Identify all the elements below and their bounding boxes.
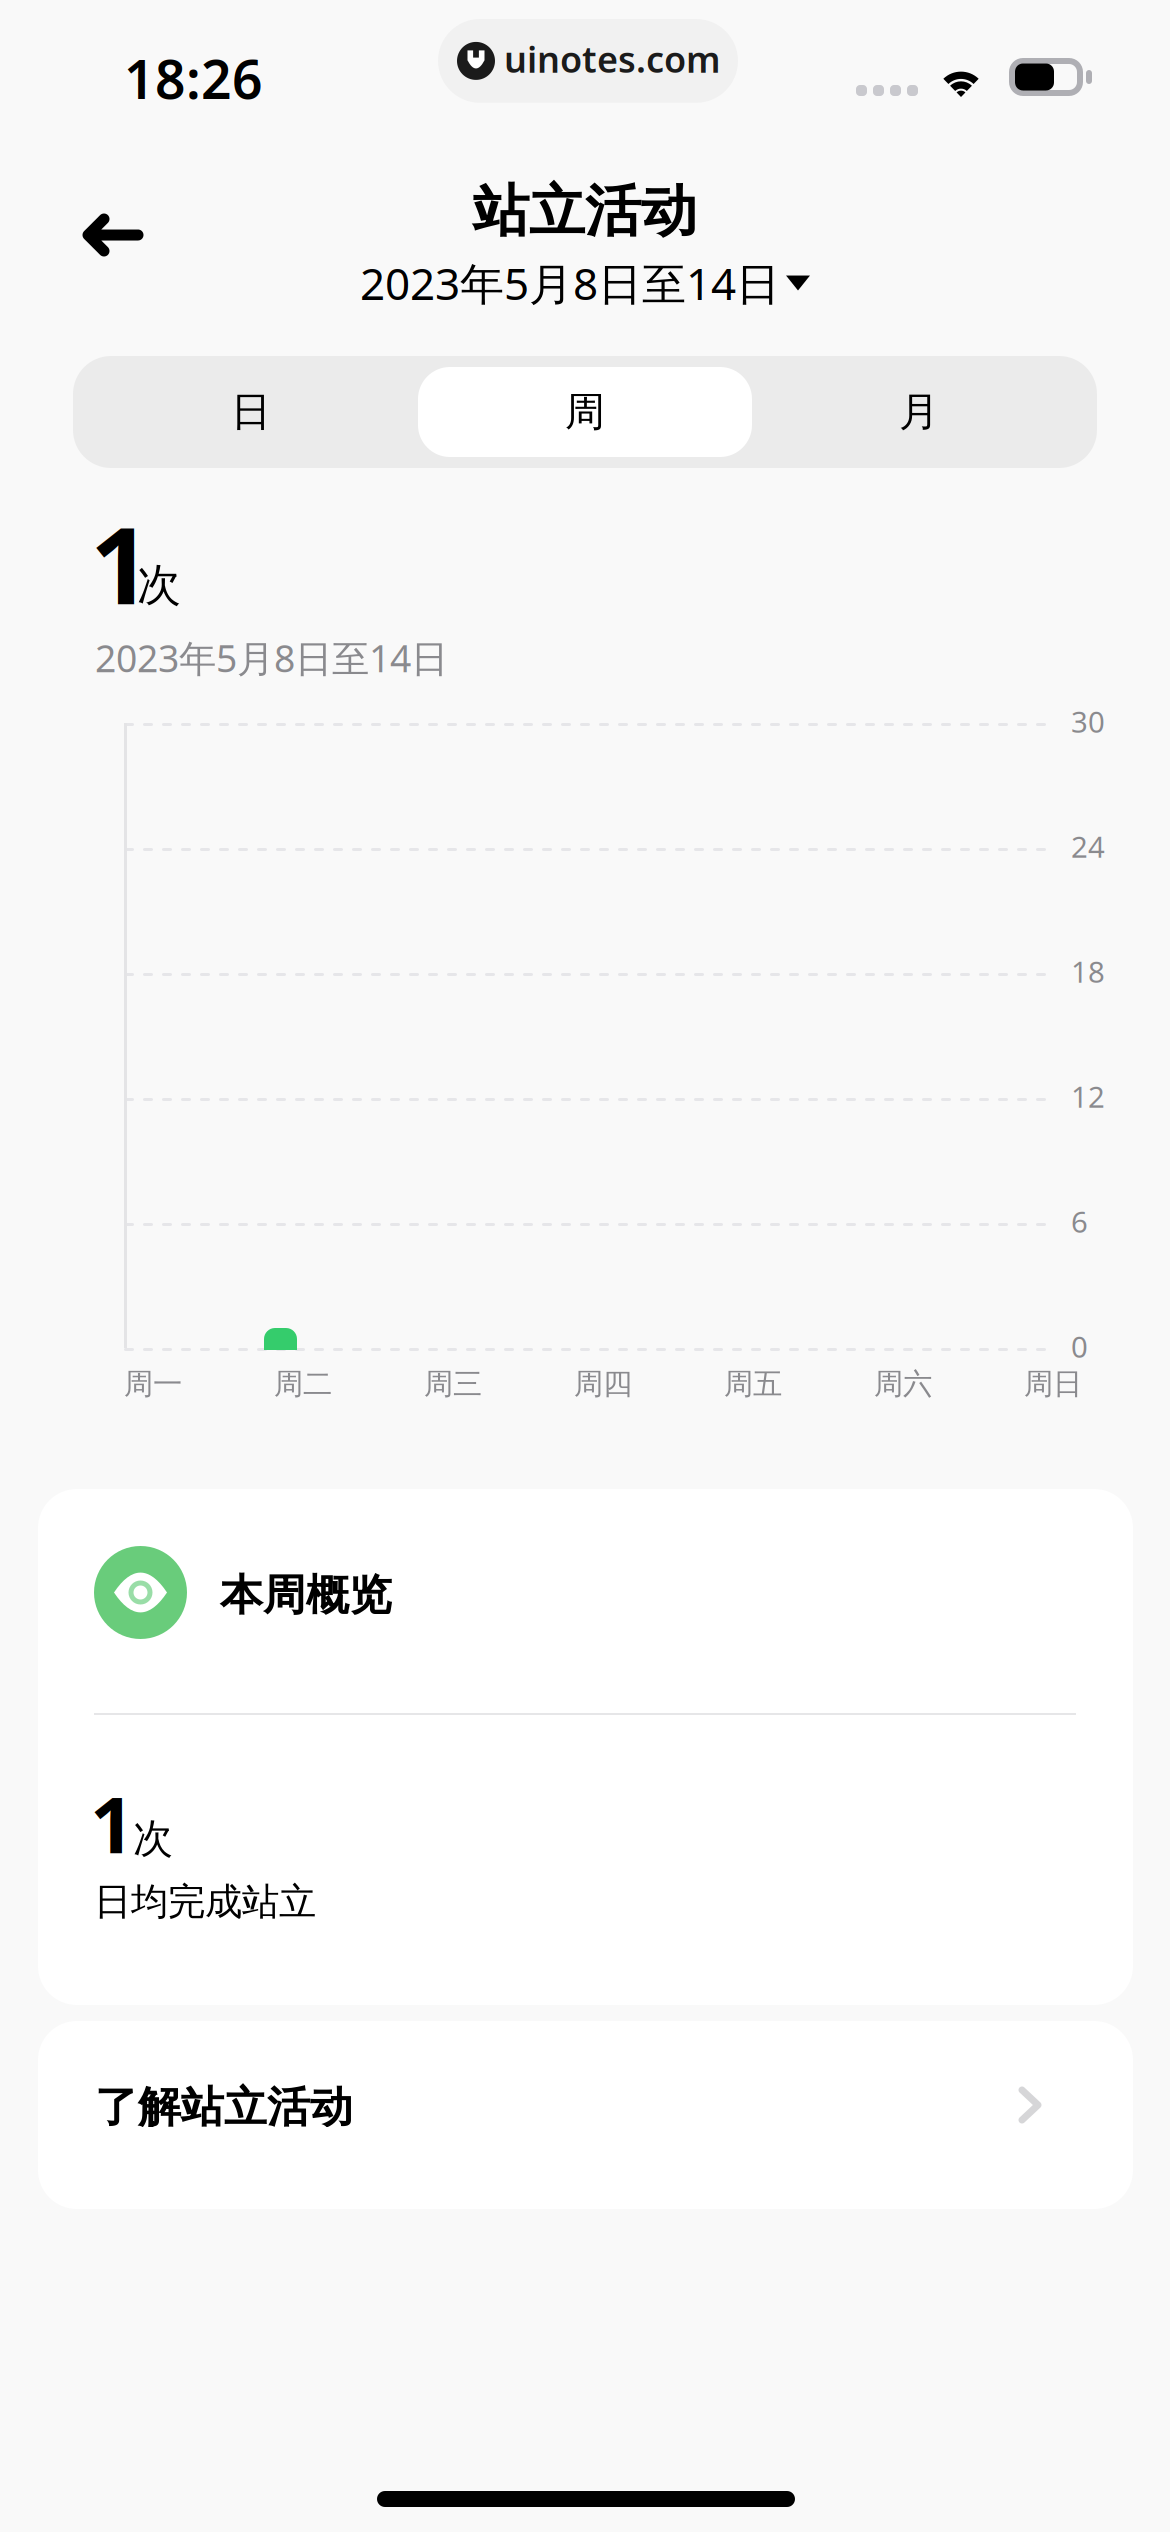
staticText: 周六 xyxy=(874,1366,932,1402)
staticText: 周四 xyxy=(574,1366,632,1402)
staticText: 2023年5月8日至14日 xyxy=(95,633,448,683)
staticText: 日 xyxy=(231,387,271,436)
button[interactable]: Back xyxy=(48,173,178,297)
staticText: 次 xyxy=(137,558,181,612)
staticText: 周日 xyxy=(1024,1366,1082,1402)
staticText: 30 xyxy=(1071,702,1105,741)
button[interactable]: 了解站立活动 xyxy=(38,2021,1133,2209)
button[interactable]: 月 xyxy=(752,367,1086,457)
staticText: 了解站立活动 xyxy=(95,2081,353,2133)
staticText: 0 xyxy=(1071,1327,1088,1366)
staticText: 站立活动 xyxy=(473,177,697,246)
staticText: 次 xyxy=(133,1814,173,1863)
staticText: 月 xyxy=(899,387,939,436)
staticText: 周 xyxy=(565,387,605,436)
staticText: 日均完成站立 xyxy=(94,1879,316,1925)
staticText: 周五 xyxy=(724,1366,782,1402)
staticText: uinotes.com xyxy=(504,35,721,83)
staticText: 1 xyxy=(90,1772,134,1875)
staticText: 1 xyxy=(90,492,151,634)
button[interactable]: 日 xyxy=(84,367,418,457)
staticText: 12 xyxy=(1071,1077,1105,1116)
staticText: 周二 xyxy=(274,1366,332,1402)
staticText: 18 xyxy=(1071,952,1105,991)
staticText: 周一 xyxy=(124,1366,182,1402)
button[interactable]: 周 xyxy=(418,367,752,457)
staticText: 2023年5月8日至14日 xyxy=(360,254,780,312)
staticText: 本周概览 xyxy=(220,1569,392,1621)
staticText: 周三 xyxy=(424,1366,482,1402)
button[interactable]: 站立活动 xyxy=(0,177,1170,312)
staticText: 18:26 xyxy=(124,43,263,114)
staticText: 24 xyxy=(1071,827,1105,866)
staticText: 6 xyxy=(1071,1202,1088,1241)
